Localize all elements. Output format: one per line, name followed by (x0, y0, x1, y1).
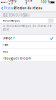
staticText: Le choix automatique du réseau est activ… (3, 24, 52, 31)
staticText: F SFR (3, 43, 9, 47)
button[interactable]: Orange F (0, 35, 56, 41)
staticText: Automatique (3, 19, 21, 22)
staticText: F Bouygues Telecom (3, 57, 31, 60)
staticText: Réseau (4, 6, 14, 10)
staticText: Free (3, 50, 9, 53)
staticText: Orange F (8, 0, 17, 6)
staticText: 100 % (41, 0, 50, 4)
button[interactable]: F Bouygues Telecom (0, 55, 56, 62)
staticText: Orange F (3, 36, 15, 40)
button[interactable]: Free (0, 48, 56, 55)
staticText: Sélection du réseau (13, 6, 42, 10)
button[interactable]: F SFR (0, 42, 56, 48)
staticText: SÉLECTION DU RÉSEAU (3, 14, 30, 17)
staticText: 09:41 (25, 0, 32, 6)
button[interactable]: Réseau (0, 5, 15, 12)
button[interactable]: Automatique (0, 18, 56, 23)
